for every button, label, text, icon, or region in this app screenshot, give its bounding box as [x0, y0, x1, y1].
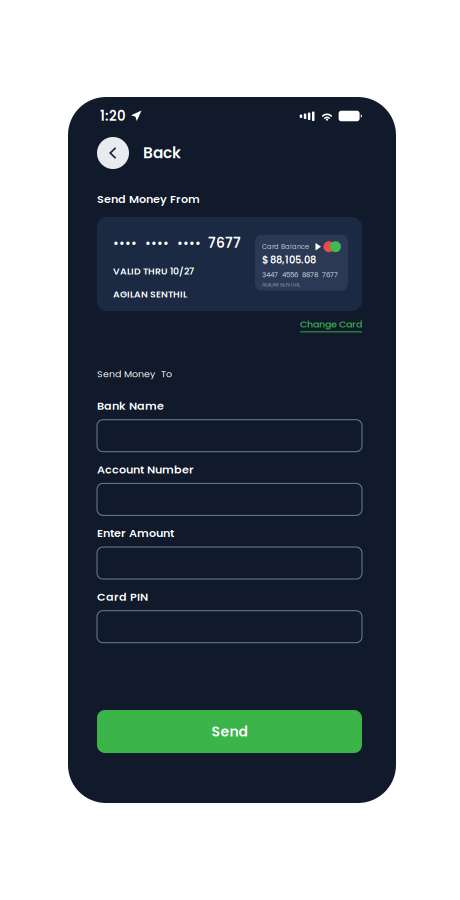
staticText: $ 88,105.08 [262, 253, 316, 267]
staticText: •••• [177, 234, 201, 251]
staticText: AGILAN SENTHIL [262, 281, 300, 288]
button[interactable]: Back [97, 137, 129, 169]
staticText: Account Number [97, 462, 194, 477]
staticText: 7677 [208, 233, 241, 253]
staticText: 3447 4556 8878 7677 [262, 270, 338, 280]
staticText: Card Balance [262, 242, 309, 251]
staticText: Enter Amount [97, 525, 174, 541]
staticText: Change Card [300, 318, 362, 331]
button[interactable]: Send [97, 710, 362, 753]
staticText: Send [211, 722, 247, 741]
staticText: •••• [113, 234, 137, 251]
staticText: Send Money To [97, 367, 172, 381]
button[interactable]: Change Card [300, 318, 362, 332]
staticText: 1:20 [100, 107, 126, 125]
staticText: Bank Name [97, 398, 164, 414]
staticText: VALID THRU 10/27 [113, 265, 194, 278]
staticText: •••• [145, 234, 169, 251]
staticText: Card PIN [97, 589, 148, 605]
staticText: Send Money From [97, 191, 200, 207]
staticText: Back [143, 142, 181, 164]
staticText: AGILAN SENTHIL [113, 288, 187, 301]
